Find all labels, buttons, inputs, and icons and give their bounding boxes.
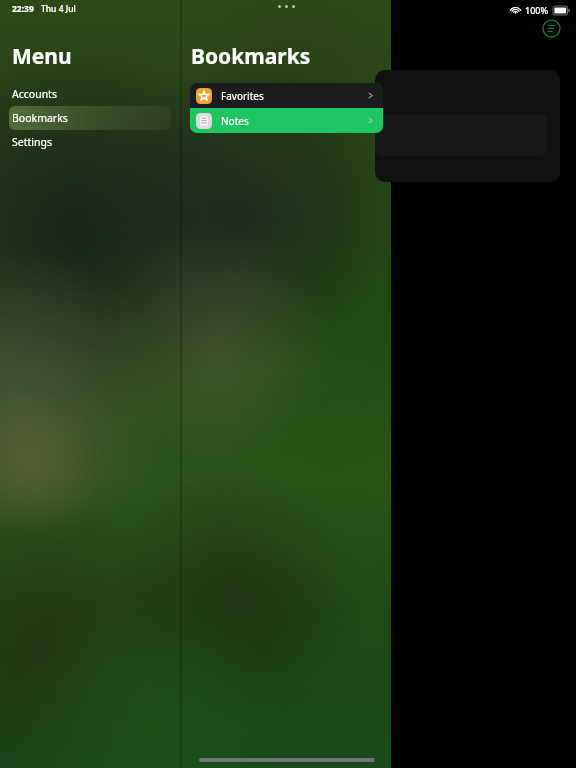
staticText: Accounts <box>12 87 57 101</box>
staticText: 100% <box>525 4 549 16</box>
button[interactable]: Notes <box>190 108 383 133</box>
staticText: Menu <box>12 42 72 71</box>
staticText: Notes <box>221 114 249 128</box>
button[interactable]: Accounts <box>9 82 171 106</box>
staticText: Settings <box>12 135 52 149</box>
staticText: 22:39 <box>12 3 34 15</box>
button[interactable]: Menu <box>542 19 561 38</box>
button[interactable]: Bookmarks <box>9 106 171 130</box>
staticText: Thu 4 Jul <box>41 3 76 15</box>
button[interactable]: Settings <box>9 130 171 154</box>
staticText: Favorites <box>221 89 264 103</box>
staticText: Bookmarks <box>12 111 68 125</box>
button[interactable]: Favorites <box>190 83 383 108</box>
staticText: Bookmarks <box>191 42 311 71</box>
